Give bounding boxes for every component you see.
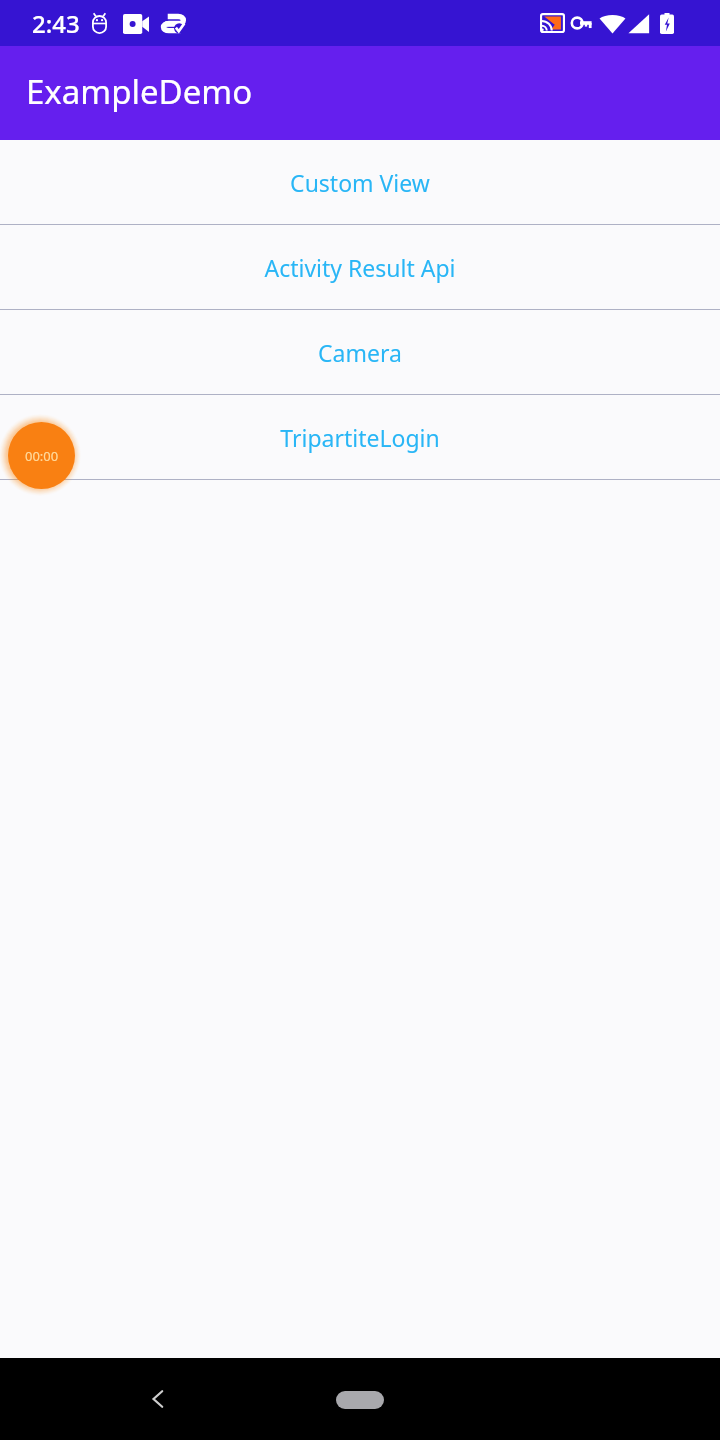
staticText: 2:43 [32, 7, 80, 40]
button[interactable]: Activity Result Api [0, 225, 720, 309]
staticText: 00:00 [25, 447, 59, 465]
staticText: Camera [318, 337, 402, 368]
button[interactable]: Timer [8, 422, 75, 489]
staticText: TripartiteLogin [280, 422, 440, 453]
staticText: ExampleDemo [26, 69, 253, 114]
button[interactable]: TripartiteLogin [0, 395, 720, 479]
button[interactable]: Home [336, 1391, 384, 1409]
staticText: Activity Result Api [264, 252, 456, 283]
button[interactable]: Back [135, 1376, 181, 1422]
staticText: Custom View [290, 167, 430, 198]
button[interactable]: Camera [0, 310, 720, 394]
button[interactable]: Custom View [0, 140, 720, 224]
